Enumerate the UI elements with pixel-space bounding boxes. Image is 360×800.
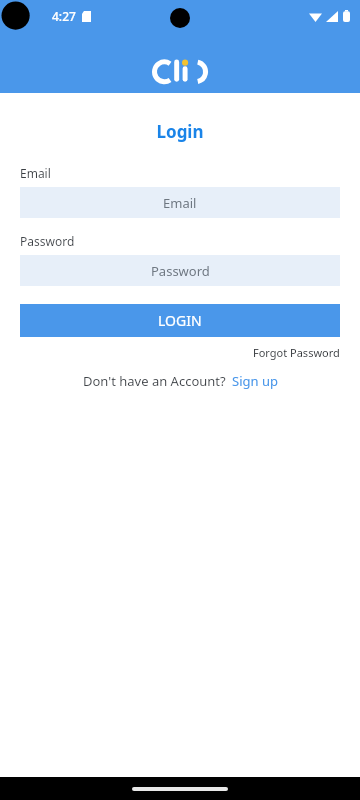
staticText: 4:27	[52, 8, 76, 24]
staticText: Login	[0, 120, 360, 143]
button[interactable]: Forgot Password	[253, 345, 340, 360]
staticText: Password	[151, 262, 210, 280]
staticText: Email	[163, 194, 197, 212]
button[interactable]: Password	[20, 255, 340, 286]
other: Home gesture handle	[132, 787, 228, 791]
staticText: Don't have an Account?	[83, 372, 226, 390]
button[interactable]: Email	[20, 187, 340, 218]
staticText: Email	[20, 165, 51, 181]
button[interactable]: LOGIN	[20, 304, 340, 337]
staticText: LOGIN	[158, 311, 202, 330]
staticText: Sign up	[232, 372, 278, 390]
staticText: Forgot Password	[253, 345, 340, 360]
staticText: Password	[20, 233, 75, 249]
button[interactable]: Sign up	[232, 372, 278, 390]
